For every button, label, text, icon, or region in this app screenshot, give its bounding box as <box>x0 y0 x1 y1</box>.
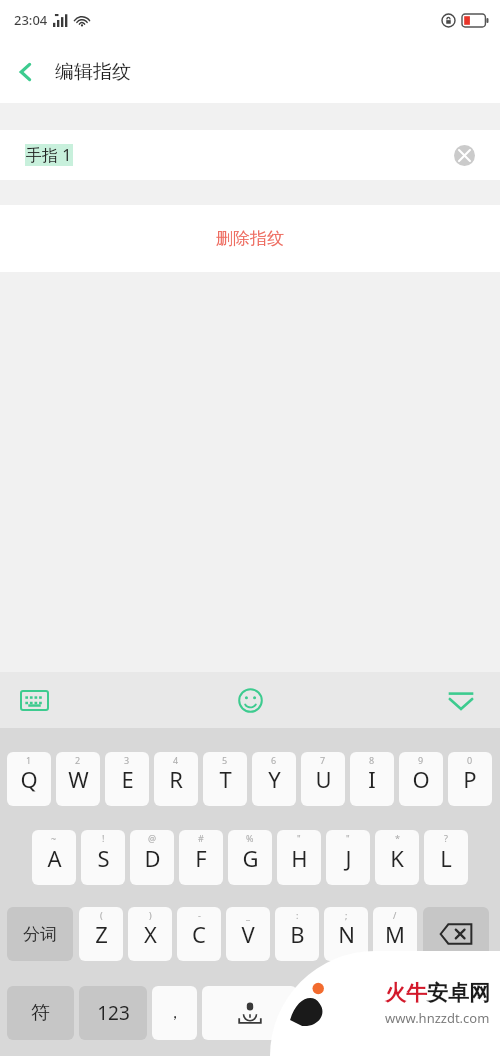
button[interactable]: Y <box>252 752 296 806</box>
staticText: www.hnzzdt.com <box>385 1009 490 1027</box>
button[interactable]: B <box>275 907 319 961</box>
button[interactable]: H <box>277 830 321 885</box>
staticText: 23:04 <box>14 11 48 29</box>
staticText: ? <box>444 832 448 844</box>
button[interactable]: G <box>228 830 272 885</box>
button[interactable]: Space <box>202 986 297 1040</box>
staticText: N <box>338 919 355 949</box>
staticText: 3 <box>124 754 130 766</box>
staticText: @ <box>148 832 157 844</box>
staticText: ( <box>100 909 103 921</box>
button[interactable]: C <box>177 907 221 961</box>
staticText: C <box>192 919 206 949</box>
button[interactable]: Clear <box>450 141 478 169</box>
staticText: " <box>346 832 350 844</box>
button[interactable]: Hide keyboard <box>440 679 482 721</box>
button[interactable]: 符 <box>7 986 74 1040</box>
button[interactable]: I <box>350 752 394 806</box>
staticText: 6 <box>271 754 277 766</box>
staticText: Y <box>268 764 281 794</box>
staticText: X <box>144 919 157 949</box>
staticText: ~ <box>51 832 57 844</box>
button[interactable]: E <box>105 752 149 806</box>
staticText: O <box>412 764 430 794</box>
button[interactable]: R <box>154 752 198 806</box>
staticText: U <box>315 764 332 794</box>
staticText: J <box>345 843 352 873</box>
staticText: " <box>297 832 301 844</box>
button[interactable]: 123 <box>79 986 147 1040</box>
staticText: 123 <box>97 1000 130 1026</box>
staticText: K <box>390 843 404 873</box>
staticText: A <box>47 843 62 873</box>
button[interactable]: P <box>448 752 492 806</box>
staticText: ; <box>345 909 348 921</box>
staticText: P <box>463 764 477 794</box>
staticText: / <box>393 909 397 921</box>
button[interactable]: Emoji <box>228 678 272 722</box>
staticText: I <box>368 764 376 794</box>
button[interactable]: ， <box>152 986 197 1040</box>
staticText: V <box>241 919 255 949</box>
button[interactable]: Keyboard layout <box>14 680 54 720</box>
button[interactable]: T <box>203 752 247 806</box>
staticText: W <box>68 764 89 794</box>
button[interactable]: Back <box>0 46 52 98</box>
button[interactable]: L <box>424 830 468 885</box>
button[interactable]: Backspace <box>423 907 489 961</box>
staticText: R <box>169 764 183 794</box>
button[interactable]: 删除指纹 <box>0 205 500 272</box>
staticText: 符 <box>31 1001 50 1025</box>
staticText: 中/英 <box>367 1002 405 1024</box>
staticText: 。 <box>317 1004 332 1023</box>
staticText: ! <box>102 832 105 844</box>
button[interactable]: U <box>301 752 345 806</box>
staticText: H <box>291 843 308 873</box>
button[interactable]: M <box>373 907 417 961</box>
button[interactable]: J <box>326 830 370 885</box>
button[interactable]: N <box>324 907 368 961</box>
button[interactable]: O <box>399 752 443 806</box>
button[interactable]: V <box>226 907 270 961</box>
staticText: 安卓网 <box>427 980 490 1006</box>
staticText: 7 <box>320 754 326 766</box>
button[interactable]: K <box>375 830 419 885</box>
staticText: L <box>440 843 452 873</box>
staticText: 删除指纹 <box>216 228 284 249</box>
staticText: # <box>198 832 204 844</box>
staticText: 火牛 <box>385 980 427 1006</box>
button[interactable]: 手指 1 <box>0 130 500 180</box>
button[interactable]: Enter <box>425 986 493 1040</box>
button[interactable]: D <box>130 830 174 885</box>
staticText: % <box>246 832 254 844</box>
staticText: T <box>219 764 232 794</box>
staticText: 9 <box>418 754 424 766</box>
button[interactable]: 。 <box>302 986 347 1040</box>
staticText: - <box>198 909 201 921</box>
staticText: E <box>121 764 134 794</box>
staticText: 2 <box>75 754 81 766</box>
button[interactable]: Q <box>7 752 51 806</box>
staticText: 分词 <box>23 924 57 945</box>
staticText: 8 <box>369 754 375 766</box>
button[interactable]: S <box>81 830 125 885</box>
staticText: G <box>242 843 259 873</box>
button[interactable]: 分词 <box>7 907 73 961</box>
staticText: 编辑指纹 <box>55 60 131 84</box>
button[interactable]: 中/英 <box>352 986 420 1040</box>
button[interactable]: F <box>179 830 223 885</box>
staticText: D <box>144 843 161 873</box>
button[interactable]: A <box>32 830 76 885</box>
button[interactable]: W <box>56 752 100 806</box>
button[interactable]: Z <box>79 907 123 961</box>
staticText: 4 <box>173 754 179 766</box>
staticText: ) <box>149 909 152 921</box>
button[interactable]: X <box>128 907 172 961</box>
staticText: Z <box>95 919 108 949</box>
staticText: : <box>296 909 299 921</box>
staticText: S <box>97 843 110 873</box>
staticText: 1 <box>26 754 32 766</box>
staticText: ， <box>167 1003 183 1023</box>
staticText: 5 <box>222 754 228 766</box>
staticText: 手指 1 <box>26 144 72 166</box>
